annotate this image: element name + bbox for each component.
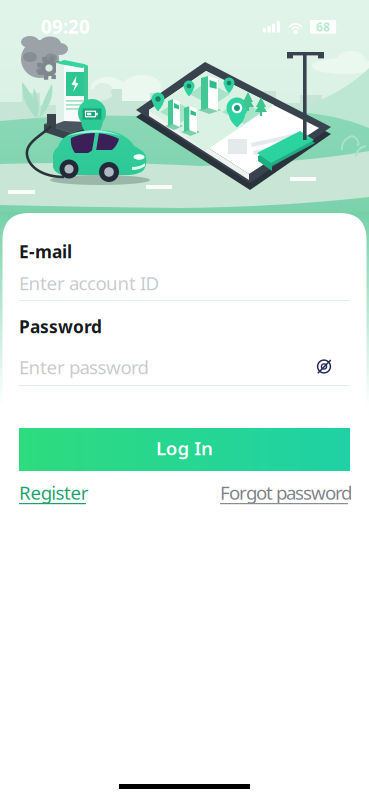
button[interactable]: Register <box>19 480 86 505</box>
staticText: 68 <box>316 19 330 35</box>
staticText: Forgot password <box>220 480 352 505</box>
staticText: Password <box>19 315 102 338</box>
button[interactable]: Enter account ID <box>19 270 350 301</box>
button[interactable]: Forgot password <box>220 480 348 505</box>
staticText: Enter account ID <box>19 270 159 295</box>
button[interactable]: Enter password <box>19 354 350 386</box>
staticText: 09:20 <box>41 14 90 39</box>
staticText: Enter password <box>19 354 148 379</box>
staticText: Log In <box>156 436 213 460</box>
staticText: E-mail <box>19 240 72 263</box>
staticText: Register <box>19 480 89 505</box>
button[interactable]: Log In <box>19 428 350 471</box>
